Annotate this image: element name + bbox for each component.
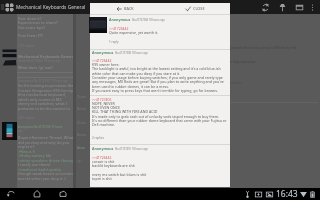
staticText: Corsair Vengeance K95 for my xyxy=(18,88,73,93)
staticText: 193 replies xyxy=(18,43,35,47)
staticText: KILL THAT THING WITH FIRE AND ACID xyxy=(92,109,158,114)
staticText: Ever done it? xyxy=(18,16,42,21)
staticText: Quote xyxy=(77,95,87,99)
staticText: So I'm looking to purchase the xyxy=(18,83,74,88)
staticText: >Shitty battery life xyxy=(18,153,52,158)
button[interactable]: Archive thread xyxy=(293,1,306,14)
staticText: Mechanical Keyboards General xyxy=(16,4,86,11)
button[interactable] xyxy=(90,96,230,146)
staticText: Anonymous xyxy=(92,146,114,151)
staticText: If you want easy to press keys that aren… xyxy=(92,88,218,93)
staticText: Bump xyxy=(77,107,86,111)
staticText: Post them IT!! xyxy=(18,33,44,38)
staticText: Mechanical Keyboards General xyxy=(18,54,76,59)
staticText: >shitty speakers driven through xyxy=(18,158,77,163)
staticText: Anonymous No.41725556 19 hours xyxy=(18,125,63,129)
staticText: 1 reply xyxy=(109,40,119,44)
staticText: Buyers Remorse Thread. What xyxy=(18,135,74,140)
button[interactable]: Ever done it? xyxy=(0,14,73,188)
staticText: Anon xyxy=(77,146,85,150)
button[interactable]: Recent apps xyxy=(56,188,70,200)
staticText: which only comes in MX xyxy=(18,97,62,102)
staticText: No.41727308 18 hours ago xyxy=(115,51,148,55)
staticText: 180 replies xyxy=(18,115,35,119)
staticText: Anonymous xyxy=(109,17,131,22)
staticText: /g/ - xyxy=(77,159,84,163)
staticText: Bump xyxy=(77,133,86,137)
staticText: Dell machine. xyxy=(92,122,115,127)
button[interactable]: More options xyxy=(308,3,317,12)
button[interactable]: Anonymous xyxy=(109,17,165,22)
staticText: I rarely use them) xyxy=(18,162,51,167)
staticText: n logo space bar xyxy=(230,59,256,63)
button[interactable]: Refresh xyxy=(259,1,272,14)
staticText: been used to rubber domes, it can be a m… xyxy=(92,84,169,89)
staticText: did you buy and why do you xyxy=(18,140,70,145)
staticText: >Nexus 5 xyxy=(18,149,35,154)
staticText: topre is shit xyxy=(92,176,112,181)
button[interactable]: CLOSE xyxy=(160,3,230,14)
staticText: Experiences to share? xyxy=(18,20,58,25)
button[interactable]: Anonymous xyxy=(92,50,148,55)
staticText: wrecks when you drop it :( xyxy=(18,176,66,181)
staticText: backlit keyboards are shit xyxy=(92,163,135,168)
staticText: NOPE, NEVER xyxy=(92,101,115,106)
staticText: ago xyxy=(18,129,23,133)
staticText: >>41726442 xyxy=(92,58,112,63)
staticText: white color that can make you dizzy if y… xyxy=(92,71,181,76)
staticText: cherry red switches; what I xyxy=(18,101,67,106)
staticText: K95 owner here. xyxy=(92,62,120,67)
button[interactable]: BACK xyxy=(90,3,160,14)
staticText: >>41726442 xyxy=(109,26,129,31)
staticText: The backlight is awful, too bright at th… xyxy=(92,66,221,71)
staticText: What does /g/ use? xyxy=(18,65,53,70)
staticText: Osw9t No.41724461 18 hours ago xyxy=(18,59,61,63)
button[interactable]: Back xyxy=(4,188,18,200)
staticText: Anonymous xyxy=(92,50,114,55)
staticText: Quote xyxy=(77,121,87,125)
staticText: any messages, MX Reds are great! But if … xyxy=(92,79,224,84)
staticText: >>41726442 xyxy=(92,155,112,160)
staticText: every mx switch but blues is shit xyxy=(92,172,147,177)
staticText: regret it? xyxy=(18,144,35,149)
staticText: NOT EVEN ONCE xyxy=(92,105,120,110)
staticText: corsair is shit xyxy=(92,159,115,164)
staticText: 2 replies xyxy=(92,136,104,140)
button[interactable]: Anonymous xyxy=(92,146,148,151)
staticText: Anonymous No.41725501 19 hours ago xyxy=(18,79,68,83)
staticText: presume to be the easiest to xyxy=(18,106,71,111)
button[interactable]: Home xyxy=(30,188,44,200)
button[interactable]: Post image xyxy=(89,17,107,33)
staticText: BACK xyxy=(124,6,134,11)
staticText: It's no different than your rubber dome … xyxy=(92,118,227,123)
staticText: It's made only to grab cash out of unluc… xyxy=(92,114,220,119)
staticText: >>41727405 xyxy=(92,97,112,102)
staticText: though weak bezels so screen xyxy=(18,171,73,176)
button[interactable]: Pin thread xyxy=(276,1,289,14)
staticText: yboard, which only comes in MX cherry re… xyxy=(230,45,297,49)
staticText: Quite expensive, yet worth it. xyxy=(109,30,159,35)
staticText: CLOSE xyxy=(193,6,205,11)
staticText: 16:43 xyxy=(276,188,298,200)
staticText: Got some tips? xyxy=(18,25,46,30)
button[interactable]: Open navigation drawer xyxy=(0,0,5,14)
staticText: >mediocre build quality xyxy=(18,167,61,172)
staticText: No.41727268 18 hours ago xyxy=(132,18,165,22)
staticText: first mechanical keyboard, xyxy=(18,92,67,97)
staticText: No.41727491 18 hours ago xyxy=(115,147,148,151)
staticText: Consider your usage before buying switch… xyxy=(92,75,223,80)
